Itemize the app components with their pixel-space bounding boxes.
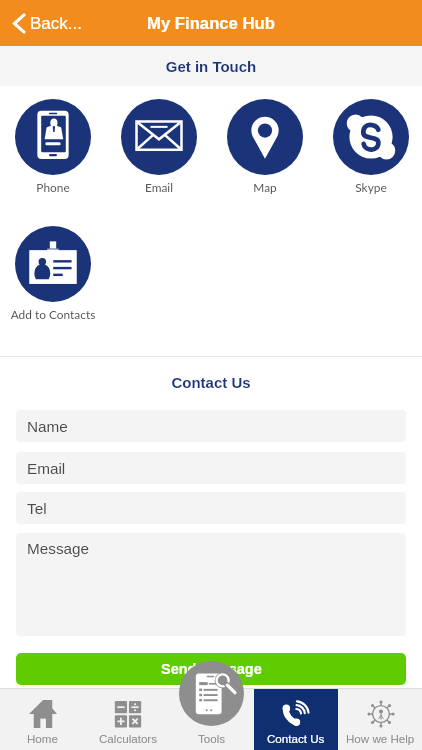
- staticText: Send Message: [161, 661, 262, 677]
- button[interactable]: Tel: [16, 492, 406, 524]
- staticText: Contact Us: [267, 732, 325, 745]
- staticText: My Finance Hub: [0, 14, 422, 33]
- button[interactable]: Phone: [0, 99, 106, 194]
- button[interactable]: Back...: [0, 8, 90, 39]
- staticText: Contact Us: [0, 374, 422, 391]
- staticText: Tools: [198, 732, 226, 745]
- staticText: Home: [27, 732, 58, 745]
- staticText: Message: [27, 540, 90, 557]
- staticText: Skype: [318, 180, 422, 194]
- button[interactable]: Message: [16, 533, 406, 636]
- staticText: How we Help: [346, 732, 415, 745]
- button[interactable]: Map: [212, 99, 318, 194]
- button[interactable]: Contact Us: [254, 689, 338, 750]
- staticText: Map: [212, 180, 318, 194]
- staticText: Calculators: [99, 732, 157, 745]
- staticText: Add to Contacts: [0, 307, 106, 321]
- button[interactable]: Add to Contacts: [0, 226, 106, 321]
- button[interactable]: Calculators: [85, 689, 170, 750]
- staticText: Phone: [0, 180, 106, 194]
- staticText: Email: [27, 460, 66, 477]
- staticText: Back...: [30, 14, 82, 33]
- staticText: Get in Touch: [0, 58, 422, 75]
- button[interactable]: How we Help: [338, 689, 422, 750]
- button[interactable]: Email: [106, 99, 212, 194]
- staticText: Tel: [27, 500, 47, 517]
- staticText: Email: [106, 180, 212, 194]
- button[interactable]: Tools: [170, 689, 254, 750]
- button[interactable]: Name: [16, 410, 406, 442]
- button[interactable]: Home: [0, 689, 85, 750]
- button[interactable]: Tools: [179, 661, 244, 726]
- button[interactable]: Email: [16, 452, 406, 484]
- button[interactable]: Skype: [318, 99, 422, 194]
- staticText: Name: [27, 418, 68, 435]
- button[interactable]: Send Message: [16, 653, 406, 685]
